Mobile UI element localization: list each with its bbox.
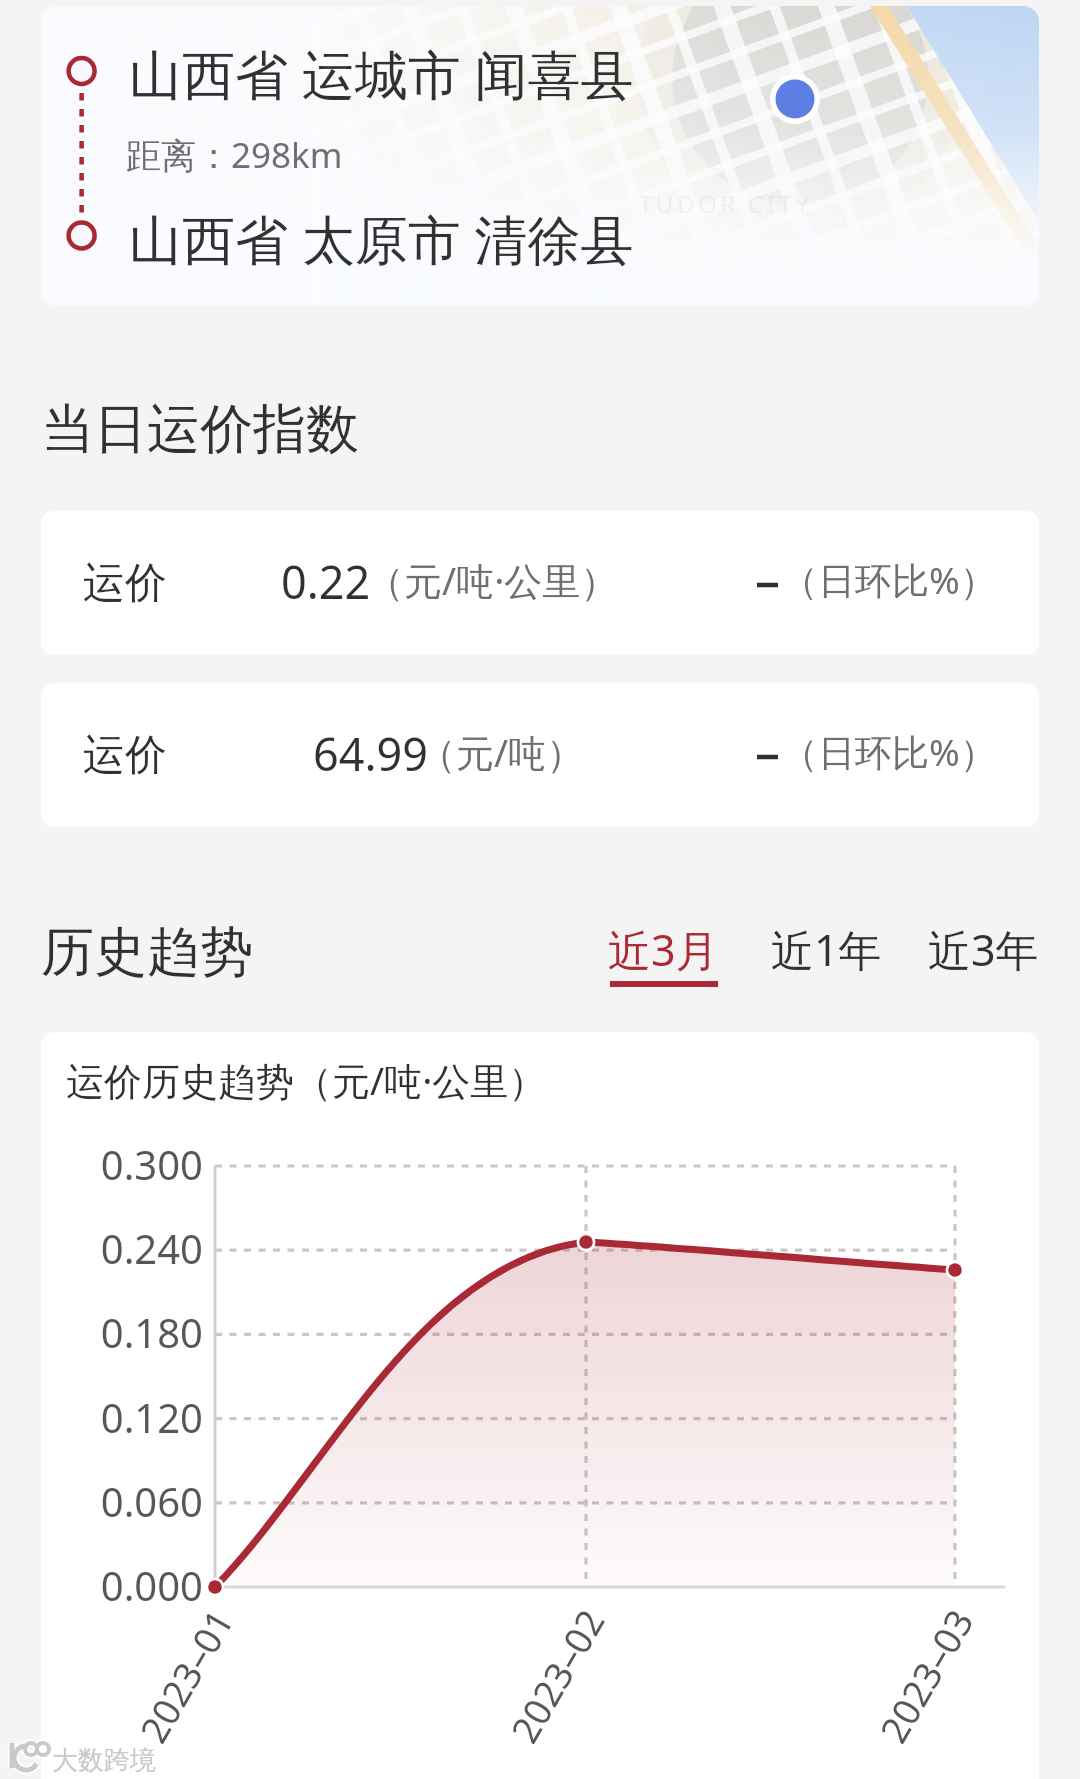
staticText: 0.060 — [0, 1474, 203, 1532]
staticText: （日环比%） — [781, 726, 997, 777]
staticText: （日环比%） — [781, 554, 997, 605]
button[interactable]: 近3年 — [918, 912, 1050, 996]
button[interactable]: 运价 — [41, 683, 1039, 827]
staticText: 运价 — [83, 729, 167, 782]
staticText: 近1年 — [771, 920, 882, 979]
staticText: 0.120 — [0, 1390, 203, 1448]
staticText: 0.180 — [0, 1305, 203, 1363]
staticText: 近3年 — [928, 920, 1039, 979]
staticText: 历史趋势 — [41, 919, 253, 986]
staticText: 64.99 — [313, 723, 429, 784]
staticText: 运价历史趋势（元/吨·公里） — [66, 1054, 547, 1106]
button[interactable]: 近1年 — [761, 912, 893, 996]
staticText: 0.000 — [0, 1558, 203, 1616]
staticText: 距离：298km — [126, 131, 343, 179]
button[interactable]: 山西省 运城市 闻喜县 — [41, 6, 1039, 306]
staticText: 0.300 — [0, 1137, 203, 1195]
staticText: 0.240 — [0, 1221, 203, 1279]
staticText: （元/吨·公里） — [366, 554, 619, 606]
staticText: 大数跨境 — [52, 1744, 156, 1777]
staticText: 2023–01 — [80, 1600, 242, 1779]
button[interactable]: 运价 — [41, 511, 1039, 655]
button[interactable]: 近3月 — [598, 912, 730, 996]
staticText: 运价 — [83, 557, 167, 610]
staticText: 山西省 运城市 闻喜县 — [129, 37, 634, 109]
staticText: TUDOR CITY — [639, 187, 813, 220]
staticText: 山西省 太原市 清徐县 — [129, 202, 634, 274]
staticText: 近3月 — [608, 920, 719, 979]
staticText: 2023–03 — [820, 1600, 982, 1779]
staticText: （元/吨） — [418, 726, 585, 778]
staticText: 当日运价指数 — [41, 396, 359, 463]
staticText: 2023–02 — [451, 1600, 613, 1779]
staticText: 0.22 — [281, 551, 371, 612]
